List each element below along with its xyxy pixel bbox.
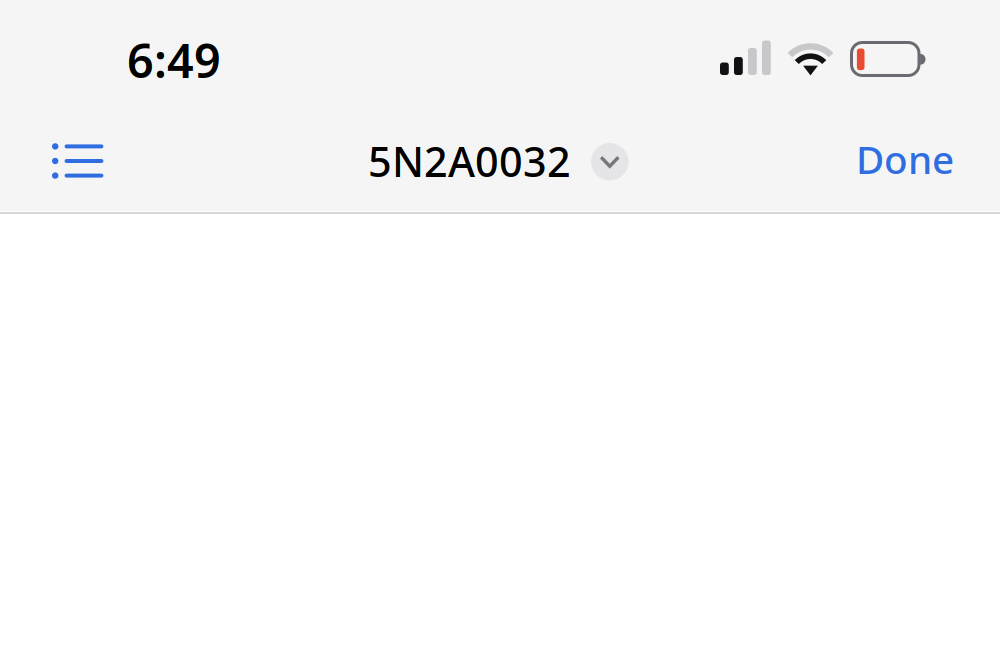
button[interactable]: Done bbox=[856, 117, 954, 201]
staticText: 5N2A0032 bbox=[368, 134, 571, 188]
button[interactable]: 5N2A0032 bbox=[368, 119, 571, 203]
button[interactable]: More options bbox=[591, 143, 628, 180]
staticText: Done bbox=[856, 133, 954, 185]
staticText: 6:49 bbox=[127, 29, 221, 91]
button[interactable]: Show list bbox=[36, 119, 120, 203]
